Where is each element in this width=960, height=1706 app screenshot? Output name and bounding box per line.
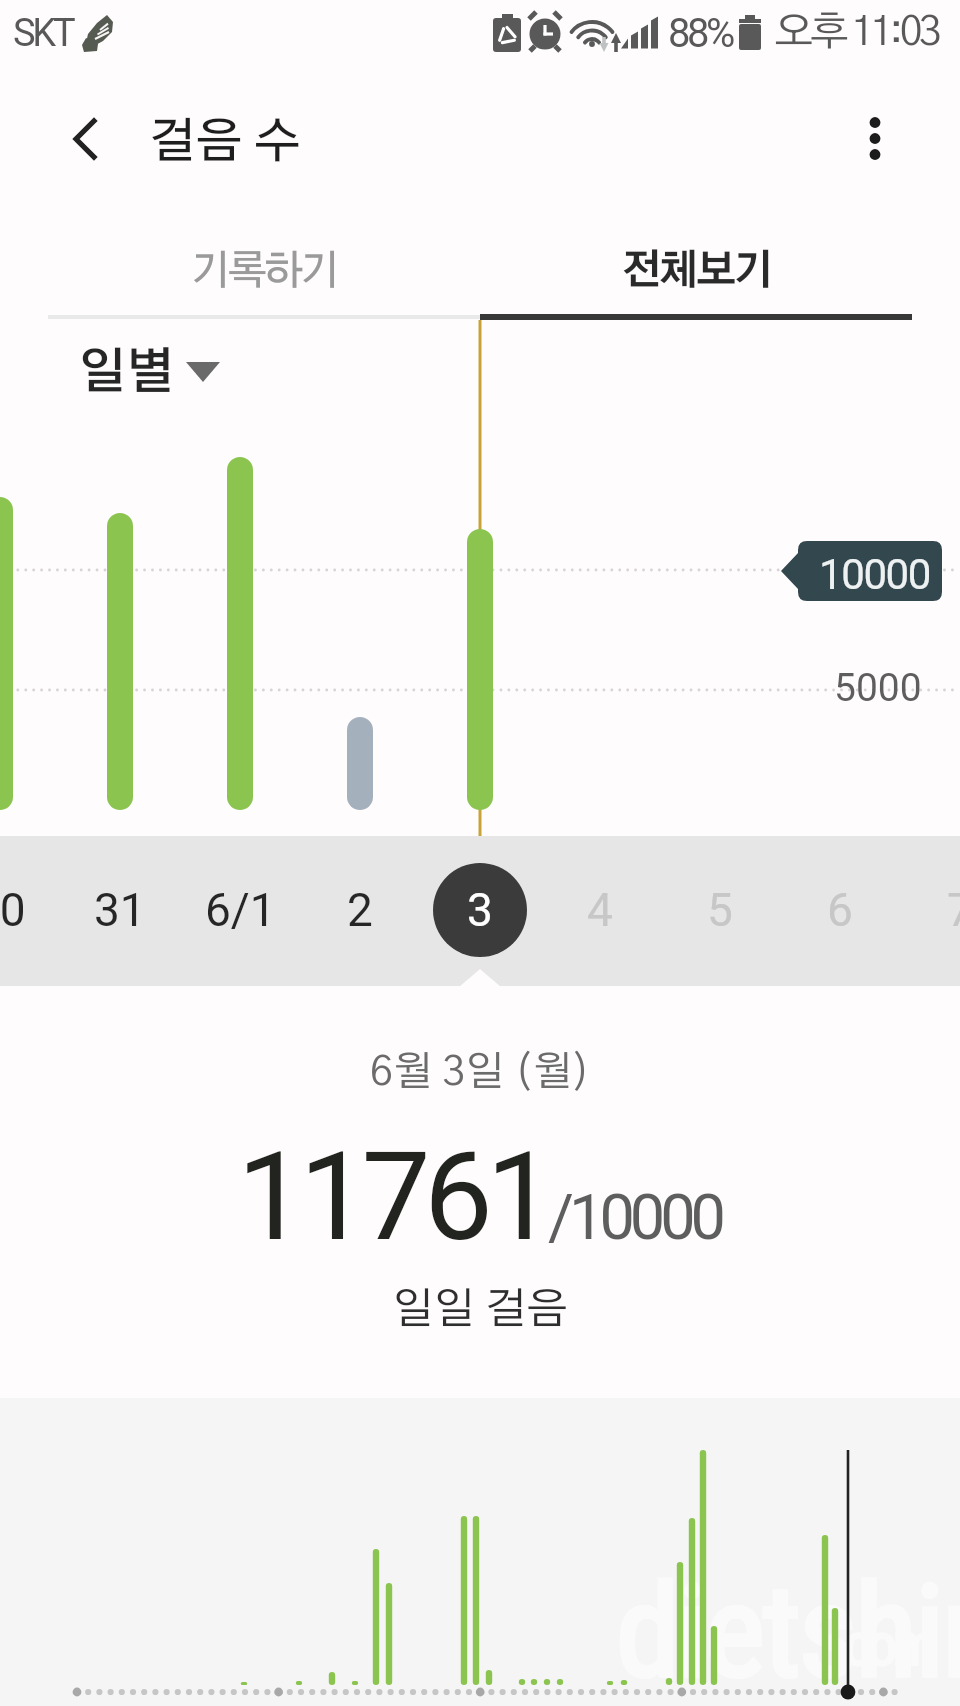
- staticText: .com: [833, 1609, 933, 1679]
- button[interactable]: 6/1: [180, 836, 300, 986]
- button[interactable]: 3: [420, 836, 540, 986]
- staticText: 6: [827, 883, 853, 937]
- button[interactable]: 5: [660, 836, 780, 986]
- staticText: 3: [467, 883, 493, 937]
- staticText: 오후 11:03: [774, 12, 938, 53]
- staticText: 30: [0, 883, 26, 937]
- staticText: 걸음 수: [149, 119, 301, 167]
- staticText: 7: [947, 883, 960, 937]
- button[interactable]: 30: [0, 836, 60, 986]
- staticText: 10000: [819, 550, 931, 599]
- button[interactable]: More options: [833, 96, 917, 198]
- staticText: /10000: [548, 1181, 722, 1255]
- staticText: 2: [347, 883, 373, 937]
- staticText: 31: [94, 883, 146, 937]
- staticText: 11761: [237, 1125, 549, 1269]
- button[interactable]: 2: [300, 836, 420, 986]
- button[interactable]: Back: [30, 89, 114, 189]
- staticText: dietshin: [616, 1557, 960, 1706]
- staticText: 전체보기: [621, 251, 771, 292]
- button[interactable]: 31: [60, 836, 180, 986]
- staticText: 5: [707, 883, 733, 937]
- button[interactable]: 4: [540, 836, 660, 986]
- staticText: 6월 3일 (월): [370, 1052, 591, 1093]
- staticText: 6/1: [205, 883, 276, 937]
- staticText: 4: [587, 883, 613, 937]
- staticText: SKT: [13, 11, 73, 56]
- staticText: 기록하기: [191, 251, 337, 292]
- staticText: 88%: [668, 10, 732, 57]
- button[interactable]: 일별: [60, 330, 250, 410]
- staticText: 일일 걸음: [392, 1289, 568, 1332]
- staticText: 일별: [78, 349, 175, 398]
- button[interactable]: 기록하기: [48, 216, 480, 320]
- button[interactable]: 6: [780, 836, 900, 986]
- button[interactable]: 전체보기: [480, 216, 912, 320]
- staticText: 5000: [834, 665, 922, 711]
